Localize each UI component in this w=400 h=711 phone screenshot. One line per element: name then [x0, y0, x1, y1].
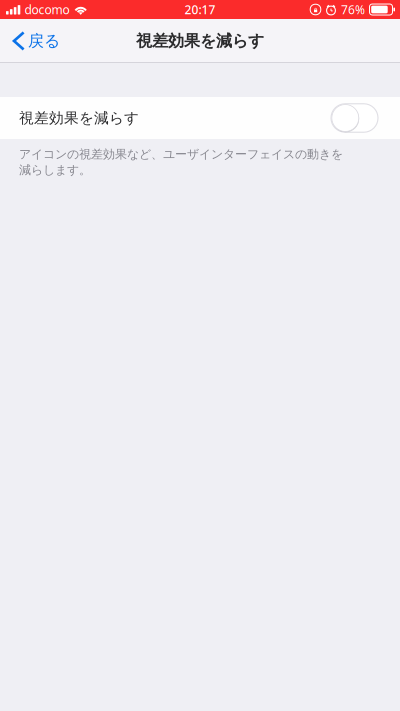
staticText: アイコンの視差効果など、ユーザインターフェイスの動きを [19, 147, 343, 162]
staticText: 視差効果を減らす [19, 109, 139, 127]
button[interactable]: 戻る [0, 19, 70, 63]
staticText: docomo [24, 1, 69, 17]
staticText: 戻る [28, 31, 60, 51]
staticText: 視差効果を減らす [136, 31, 264, 51]
button[interactable]: 視差効果を減らす [0, 97, 400, 139]
staticText: 76% [341, 1, 365, 17]
staticText: 減らします。 [19, 163, 91, 177]
staticText: 20:17 [184, 1, 215, 17]
